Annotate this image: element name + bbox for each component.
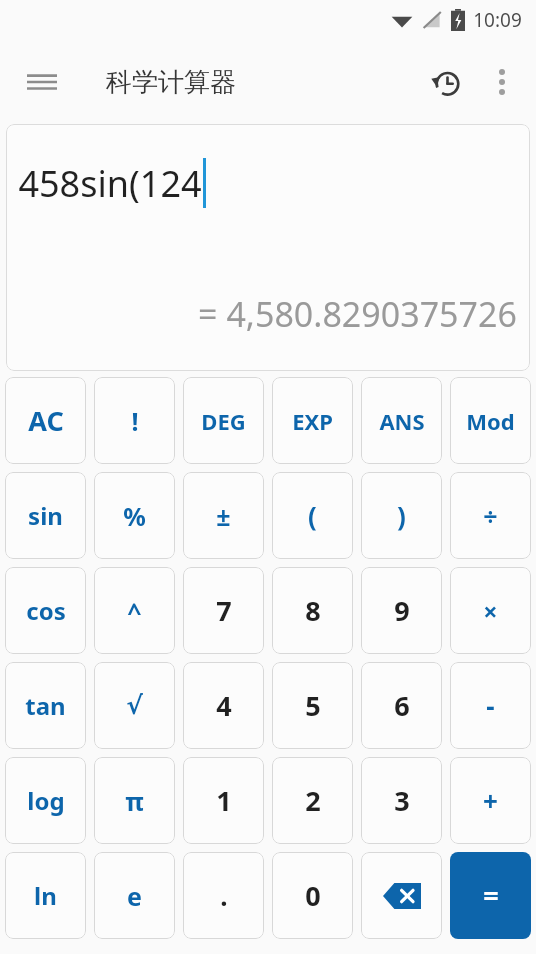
button[interactable]: 8 bbox=[272, 567, 353, 654]
staticText: 9 bbox=[394, 592, 410, 629]
button[interactable]: 6 bbox=[361, 662, 442, 749]
button[interactable]: + bbox=[450, 757, 531, 844]
staticText: 7 bbox=[216, 592, 232, 629]
button[interactable]: 7 bbox=[183, 567, 264, 654]
button[interactable]: 3 bbox=[361, 757, 442, 844]
staticText: ( bbox=[308, 498, 317, 533]
staticText: ln bbox=[34, 879, 57, 912]
staticText: ^ bbox=[127, 594, 142, 628]
button[interactable]: % bbox=[94, 472, 175, 559]
staticText: e bbox=[127, 879, 142, 913]
button[interactable]: ) bbox=[361, 472, 442, 559]
button[interactable]: tan bbox=[5, 662, 86, 749]
staticText: 458sin(124 bbox=[18, 159, 202, 208]
staticText: π bbox=[125, 784, 144, 818]
staticText: × bbox=[483, 594, 498, 628]
staticText: = bbox=[483, 877, 499, 914]
staticText: DEG bbox=[201, 406, 246, 436]
staticText: ) bbox=[397, 498, 406, 533]
button[interactable]: cos bbox=[5, 567, 86, 654]
staticText: + bbox=[483, 783, 498, 818]
button[interactable]: . bbox=[183, 852, 264, 939]
button[interactable]: ln bbox=[5, 852, 86, 939]
button[interactable]: = bbox=[450, 852, 531, 939]
staticText: cos bbox=[26, 594, 66, 627]
button[interactable]: ! bbox=[94, 377, 175, 464]
staticText: 6 bbox=[394, 687, 410, 724]
button[interactable]: AC bbox=[5, 377, 86, 464]
staticText: 5 bbox=[305, 687, 321, 724]
button[interactable]: EXP bbox=[272, 377, 353, 464]
button[interactable]: Mod bbox=[450, 377, 531, 464]
staticText: AC bbox=[28, 402, 64, 439]
button[interactable]: log bbox=[5, 757, 86, 844]
staticText: ± bbox=[216, 499, 231, 533]
staticText: log bbox=[27, 784, 65, 817]
button[interactable]: More options bbox=[474, 54, 530, 110]
button[interactable]: √ bbox=[94, 662, 175, 749]
button[interactable]: 1 bbox=[183, 757, 264, 844]
button[interactable]: sin bbox=[5, 472, 86, 559]
staticText: 8 bbox=[305, 592, 321, 629]
button[interactable]: ± bbox=[183, 472, 264, 559]
staticText: 0 bbox=[305, 877, 321, 914]
staticText: 3 bbox=[394, 782, 410, 819]
button[interactable]: ÷ bbox=[450, 472, 531, 559]
button[interactable]: π bbox=[94, 757, 175, 844]
button[interactable]: ANS bbox=[361, 377, 442, 464]
staticText: √ bbox=[126, 691, 143, 720]
staticText: 4 bbox=[216, 687, 232, 724]
staticText: ANS bbox=[379, 406, 425, 436]
staticText: ÷ bbox=[483, 499, 498, 533]
staticText: EXP bbox=[292, 406, 333, 436]
staticText: - bbox=[486, 688, 495, 723]
button[interactable]: 0 bbox=[272, 852, 353, 939]
staticText: Mod bbox=[466, 406, 515, 436]
staticText: 10:09 bbox=[473, 7, 522, 33]
button[interactable]: × bbox=[450, 567, 531, 654]
staticText: = 4,580.8290375726 bbox=[198, 291, 517, 337]
staticText: tan bbox=[25, 689, 66, 722]
button[interactable]: 9 bbox=[361, 567, 442, 654]
staticText: % bbox=[123, 499, 146, 533]
button[interactable]: History bbox=[418, 54, 474, 110]
staticText: 1 bbox=[216, 782, 232, 819]
staticText: ! bbox=[131, 404, 139, 438]
button[interactable]: ^ bbox=[94, 567, 175, 654]
staticText: sin bbox=[28, 499, 63, 532]
button[interactable]: DEG bbox=[183, 377, 264, 464]
button[interactable]: 2 bbox=[272, 757, 353, 844]
button[interactable]: 458sin(124 bbox=[6, 124, 530, 371]
button[interactable]: ( bbox=[272, 472, 353, 559]
button[interactable]: Backspace bbox=[361, 852, 442, 939]
button[interactable]: e bbox=[94, 852, 175, 939]
button[interactable]: 4 bbox=[183, 662, 264, 749]
button[interactable]: - bbox=[450, 662, 531, 749]
button[interactable]: 5 bbox=[272, 662, 353, 749]
staticText: . bbox=[220, 878, 228, 913]
staticText: 科学计算器 bbox=[106, 66, 236, 99]
button[interactable]: Open navigation menu bbox=[14, 54, 70, 110]
staticText: 2 bbox=[305, 782, 321, 819]
